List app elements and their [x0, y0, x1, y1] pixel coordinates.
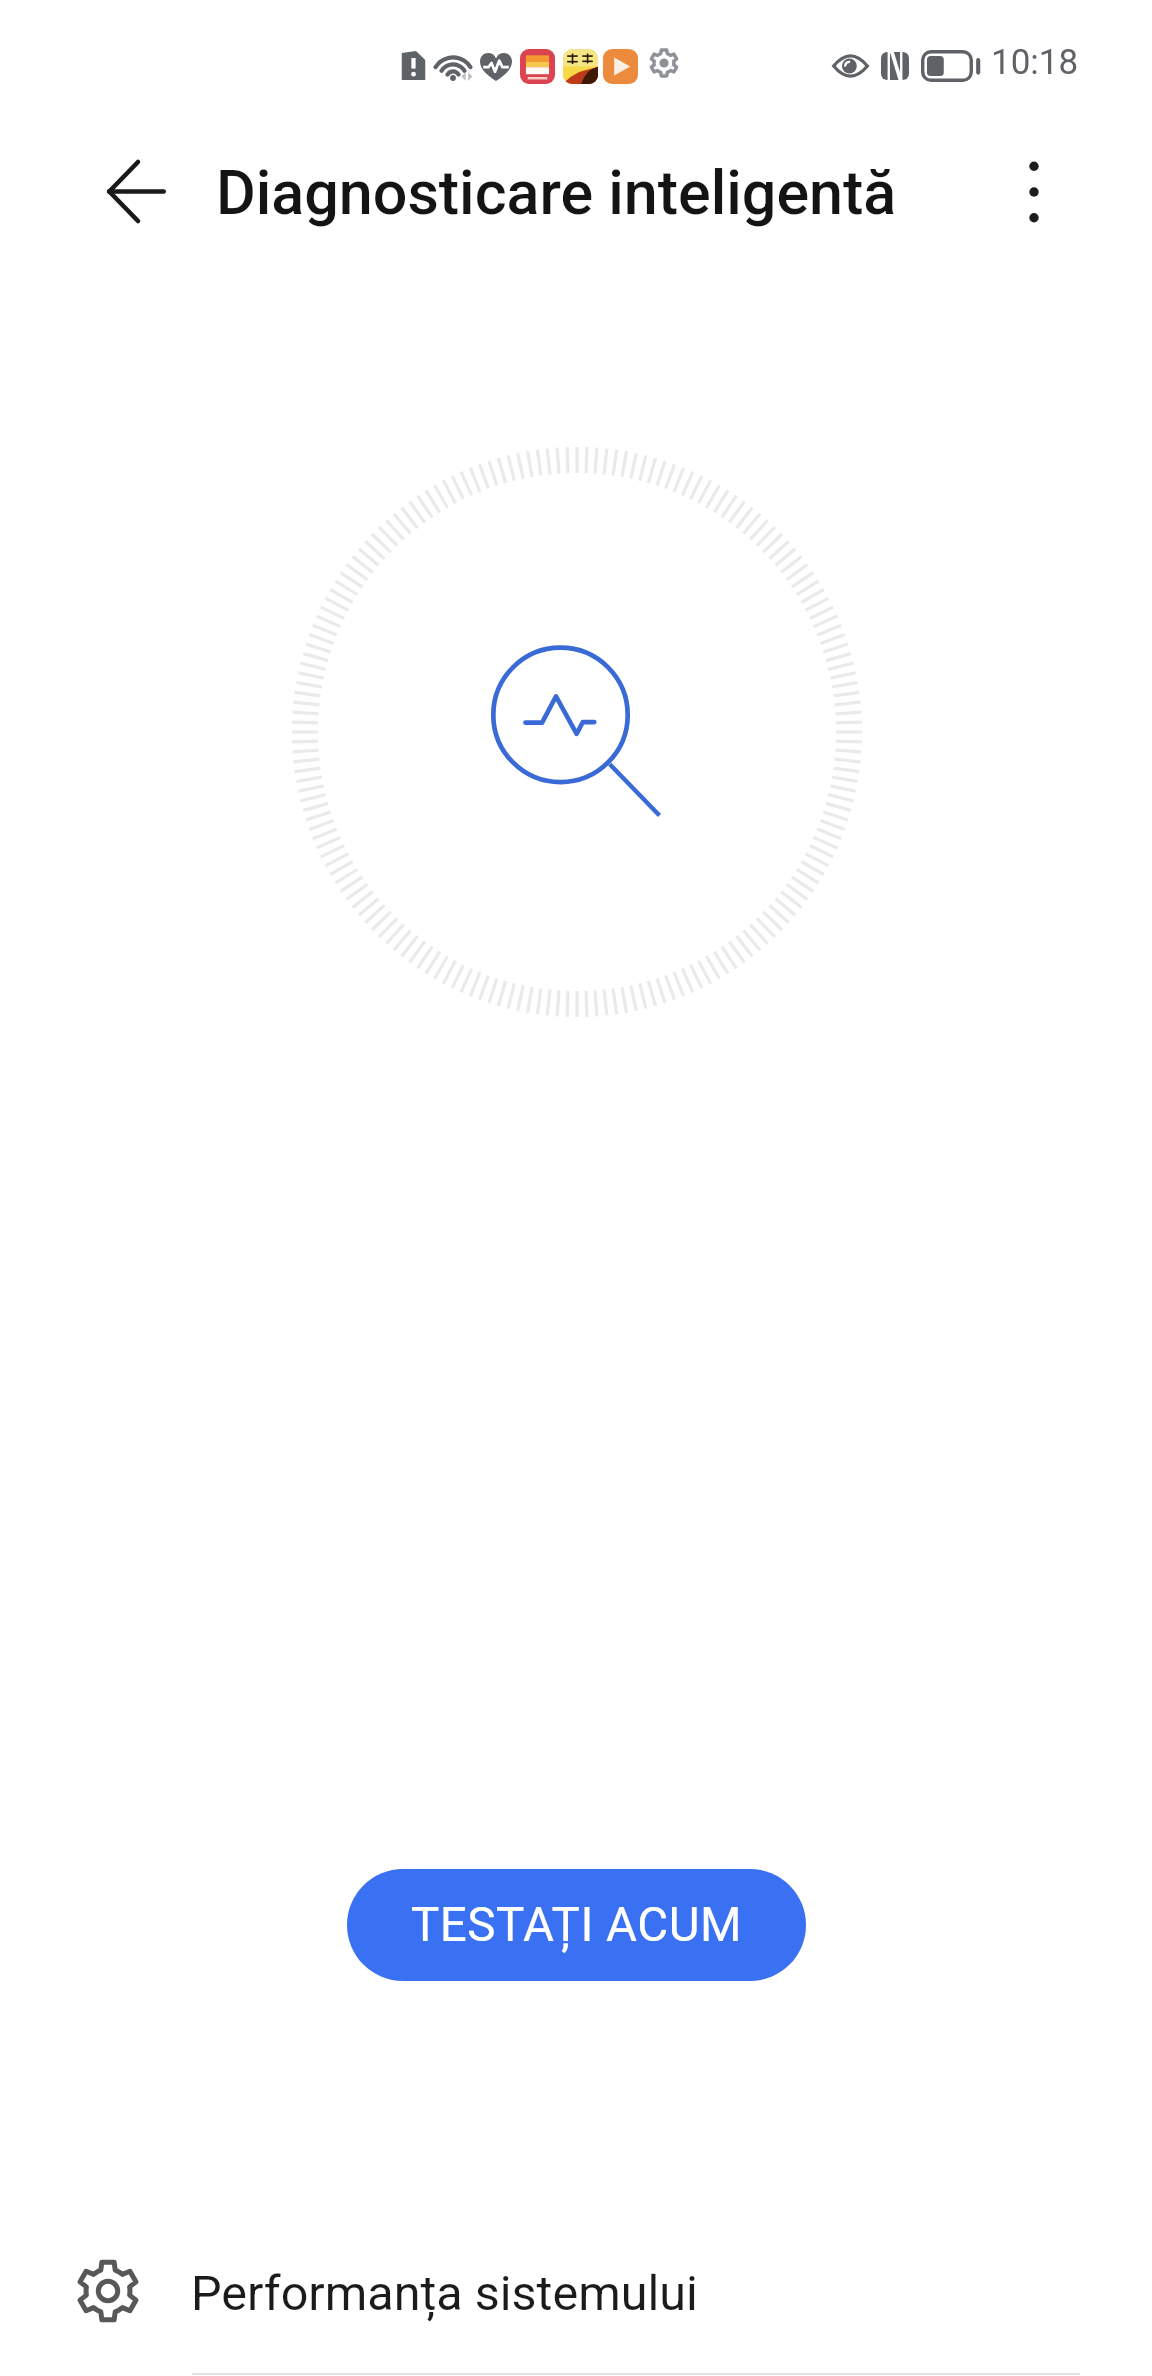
staticText: Diagnosticare inteligentă [216, 157, 897, 228]
button[interactable]: More options [974, 132, 1094, 252]
button[interactable]: Performanța sistemului [0, 2228, 1152, 2356]
button[interactable]: Back [76, 131, 196, 251]
staticText: TESTAȚI ACUM [411, 1897, 743, 1953]
staticText: 10:18 [991, 42, 1079, 83]
staticText: Performanța sistemului [191, 2265, 698, 2322]
button[interactable]: TESTAȚI ACUM [347, 1869, 806, 1981]
